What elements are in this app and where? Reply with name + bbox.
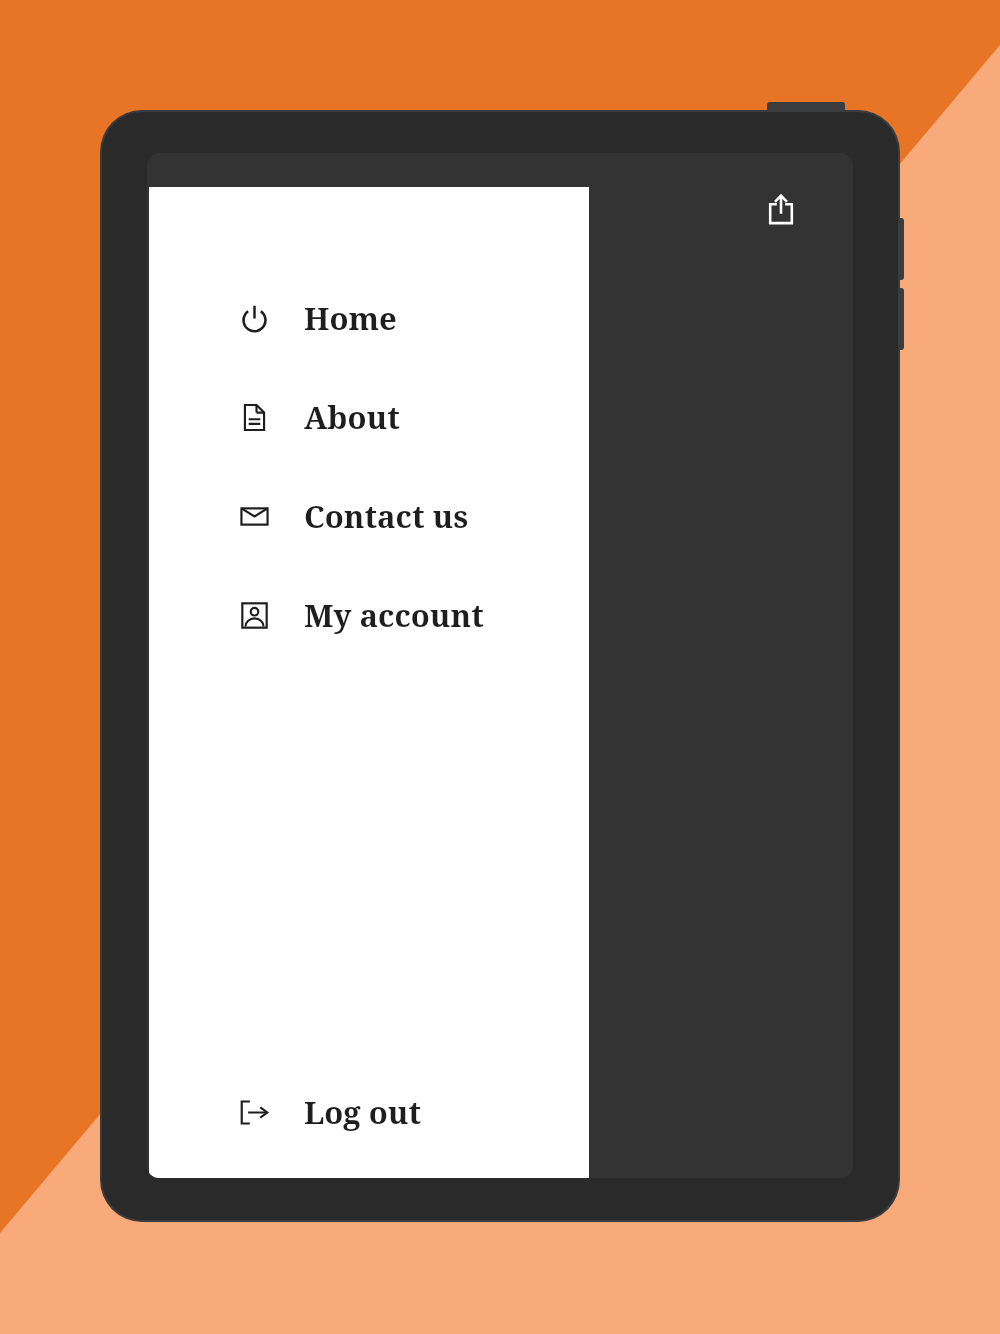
button[interactable]: Log out [149, 1084, 589, 1140]
staticText: Contact us [304, 495, 469, 537]
button[interactable]: About [149, 389, 589, 445]
staticText: Log out [304, 1091, 421, 1133]
staticText: Home [304, 297, 397, 339]
staticText: About [304, 396, 400, 438]
button[interactable]: Share [755, 183, 807, 235]
button[interactable]: Home [149, 290, 589, 346]
staticText: My account [304, 594, 484, 636]
button[interactable]: My account [149, 587, 589, 643]
button[interactable]: Contact us [149, 488, 589, 544]
